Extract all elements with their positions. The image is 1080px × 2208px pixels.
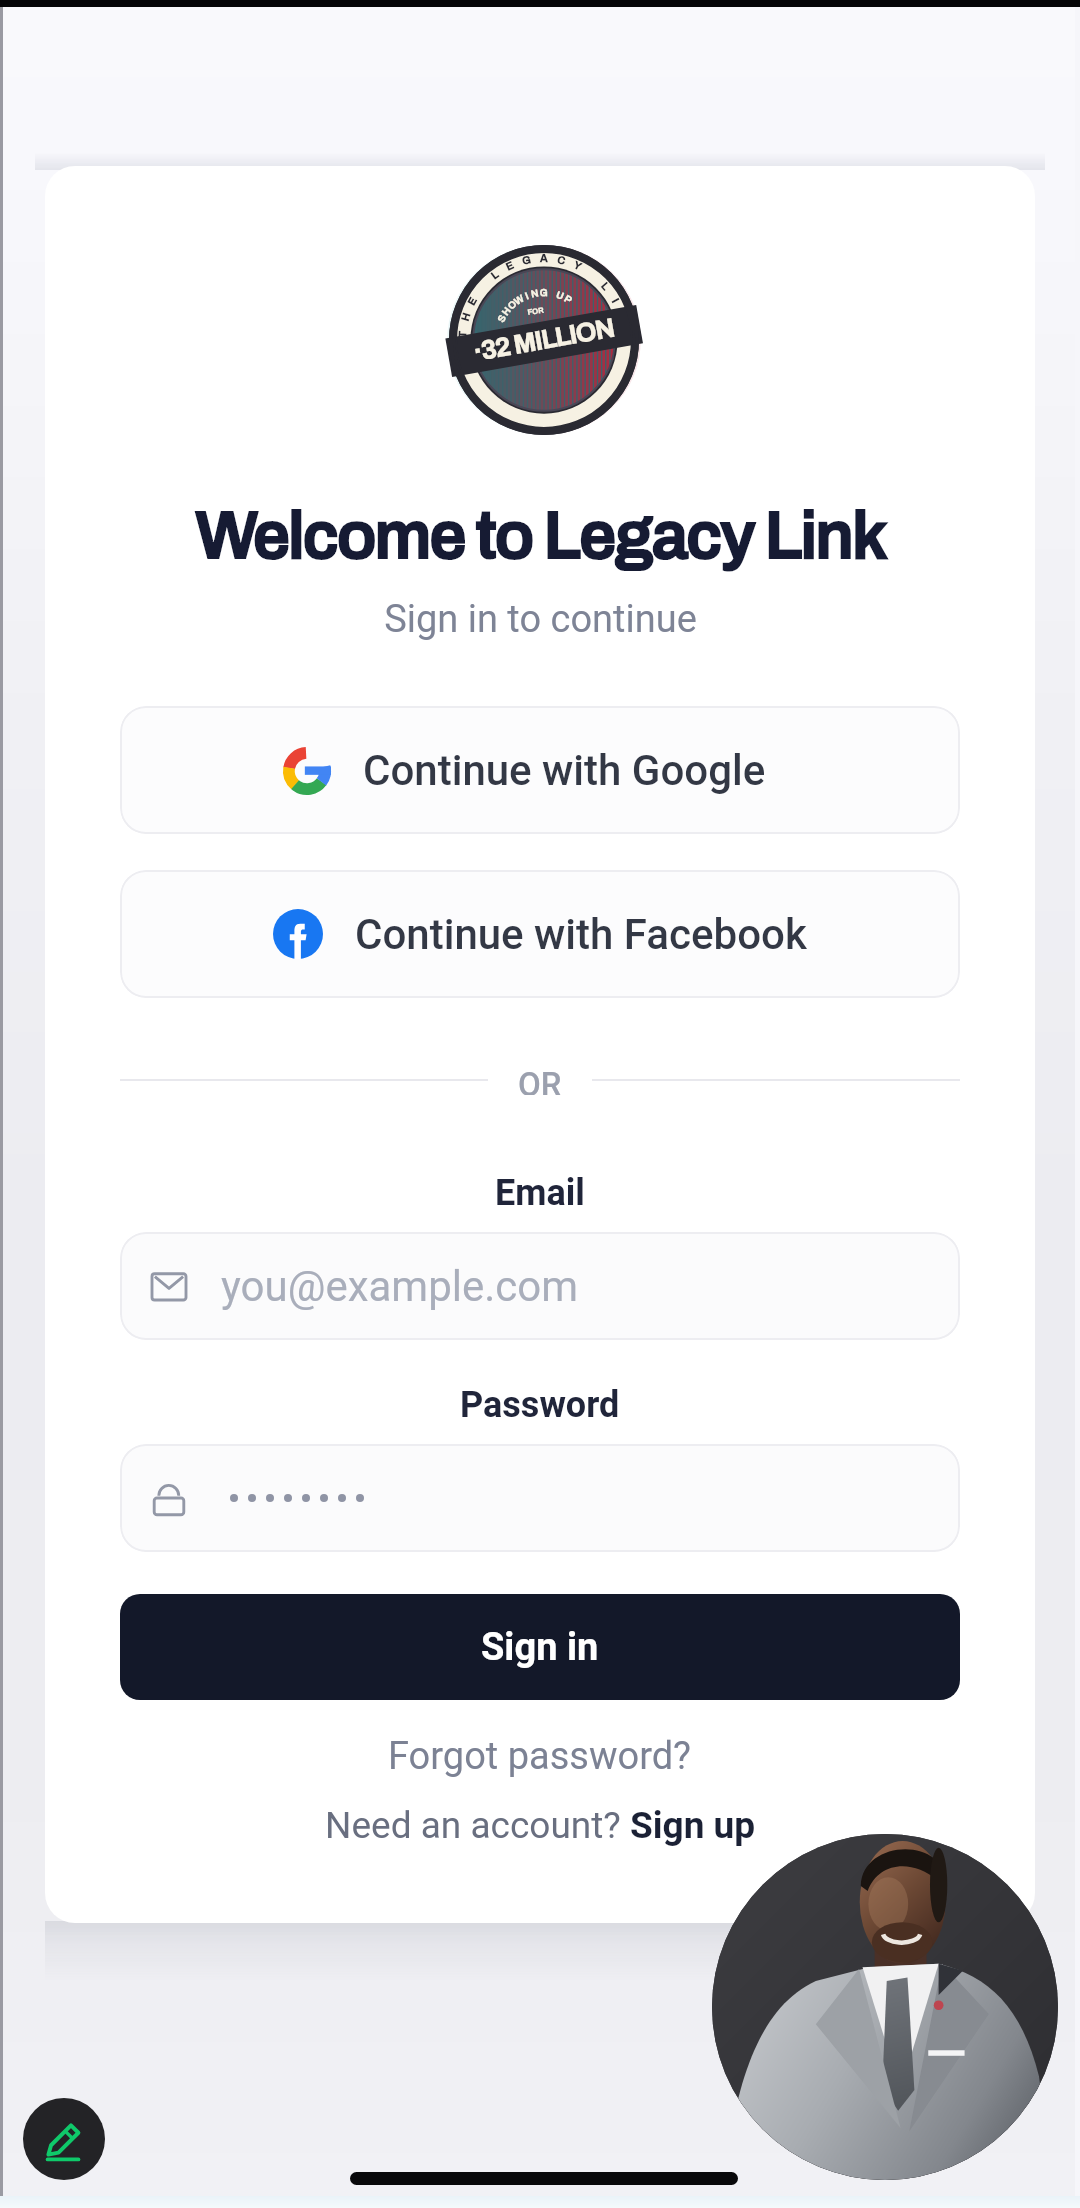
button[interactable]: Edit bbox=[23, 2098, 105, 2180]
staticText: you@example.com bbox=[221, 1262, 579, 1311]
button[interactable] bbox=[120, 1444, 960, 1552]
button[interactable]: Sign in bbox=[120, 1594, 960, 1700]
staticText: Password bbox=[460, 1384, 620, 1426]
button[interactable]: you@example.com bbox=[120, 1232, 960, 1340]
button[interactable]: Profile photo bbox=[712, 1834, 1058, 2180]
button[interactable]: Forgot password? bbox=[374, 1728, 706, 1785]
staticText: Continue with Facebook bbox=[355, 910, 807, 959]
staticText: Continue with Google bbox=[363, 746, 766, 795]
staticText: Sign in bbox=[481, 1625, 599, 1670]
staticText: Email bbox=[495, 1172, 585, 1214]
staticText: Sign in to continue bbox=[384, 597, 697, 642]
button[interactable]: Need an account? Sign up bbox=[311, 1798, 770, 1853]
staticText: Welcome to Legacy Link bbox=[195, 500, 886, 572]
button[interactable]: Continue with Google bbox=[120, 706, 960, 834]
button[interactable]: Continue with Facebook bbox=[120, 870, 960, 998]
staticText: OR bbox=[518, 1065, 562, 1095]
